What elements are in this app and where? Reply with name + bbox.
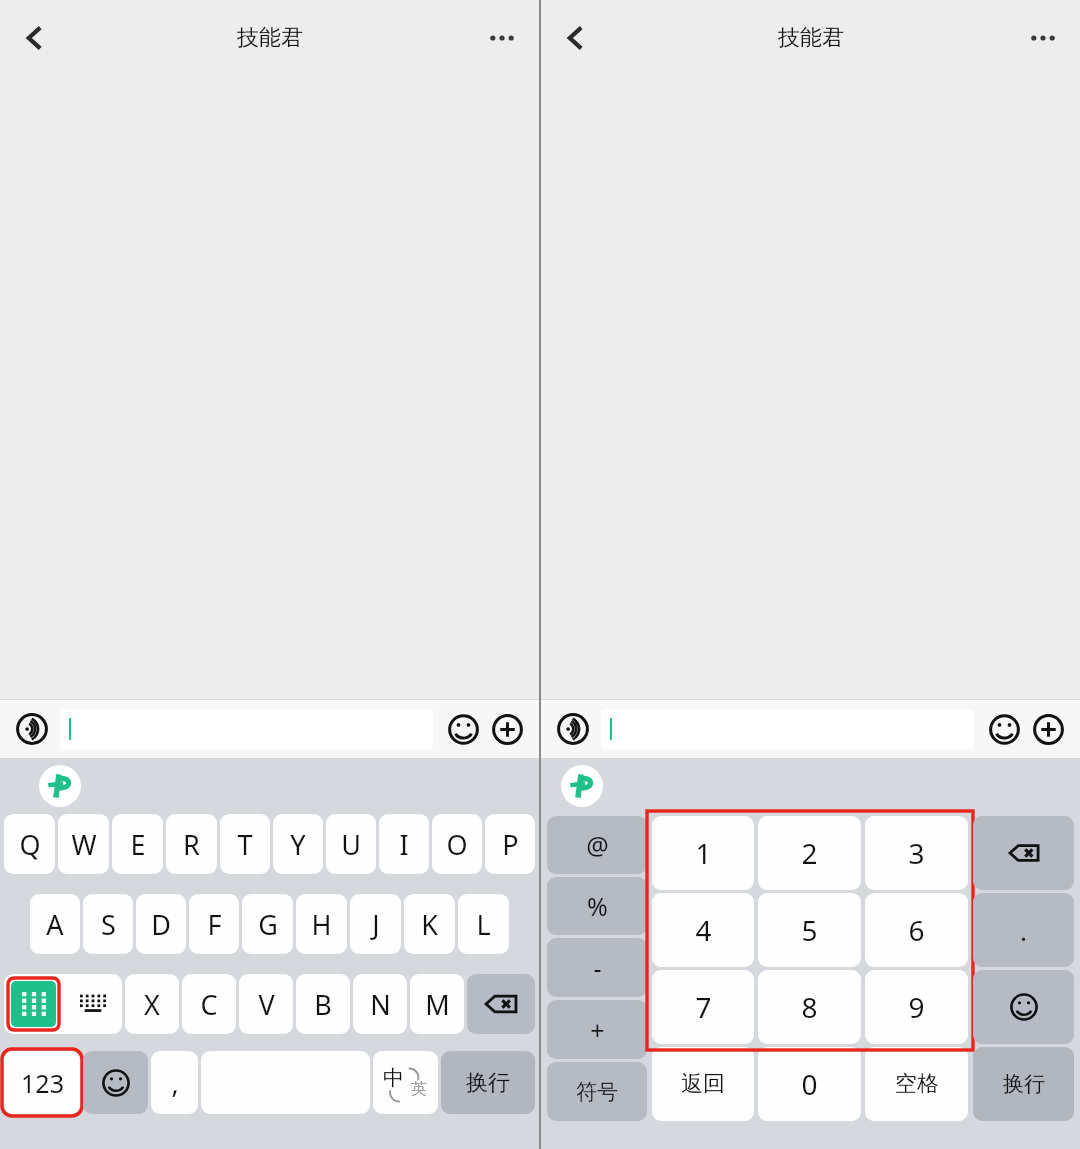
button[interactable]: Voice input xyxy=(12,709,52,749)
staticText: 英 xyxy=(411,1079,427,1099)
staticText: 5 xyxy=(801,911,818,949)
staticText: 空格 xyxy=(895,1070,939,1098)
button[interactable]: Handwriting grid xyxy=(11,981,56,1027)
staticText: Q xyxy=(19,826,41,863)
staticText: 7 xyxy=(695,988,712,1026)
button[interactable]: 空格 xyxy=(865,1047,968,1121)
button[interactable]: 返回 xyxy=(652,1047,754,1121)
button[interactable]: E xyxy=(112,814,163,874)
button[interactable]: G xyxy=(242,894,293,954)
staticText: K xyxy=(421,906,438,943)
button[interactable]: P xyxy=(485,814,535,874)
staticText: J xyxy=(372,906,380,943)
button[interactable]: 4 xyxy=(652,893,754,967)
button[interactable]: @ xyxy=(547,816,647,874)
staticText: R xyxy=(183,826,200,863)
button[interactable]: U xyxy=(326,814,376,874)
staticText: C xyxy=(200,986,218,1023)
button[interactable]: D xyxy=(136,894,186,954)
staticText: B xyxy=(314,986,332,1023)
staticText: 1 xyxy=(695,834,712,872)
staticText: X xyxy=(144,986,160,1023)
button[interactable] xyxy=(467,974,535,1034)
staticText: M xyxy=(425,986,450,1023)
staticText: Y xyxy=(290,826,306,863)
button[interactable]: O xyxy=(432,814,482,874)
button[interactable]: N xyxy=(353,974,407,1034)
button[interactable]: A xyxy=(30,894,80,954)
button[interactable]: C xyxy=(182,974,236,1034)
staticText: 123 xyxy=(21,1066,64,1100)
button[interactable]: Y xyxy=(273,814,323,874)
button[interactable]: 7 xyxy=(652,970,754,1044)
button[interactable] xyxy=(60,709,433,749)
button[interactable]: Input method logo xyxy=(561,765,603,807)
button[interactable]: 3 xyxy=(865,816,968,890)
button[interactable]: More options xyxy=(475,11,529,65)
staticText: . xyxy=(1020,913,1027,948)
button[interactable]: 2 xyxy=(758,816,861,890)
button[interactable]: Emoji xyxy=(984,709,1024,749)
button[interactable]: 6 xyxy=(865,893,968,967)
button[interactable] xyxy=(973,970,1074,1044)
button[interactable]: 符号 xyxy=(547,1062,647,1121)
button[interactable]: F xyxy=(189,894,239,954)
button[interactable]: X xyxy=(125,974,179,1034)
button[interactable]: S xyxy=(83,894,133,954)
button[interactable]: B xyxy=(296,974,350,1034)
button[interactable] xyxy=(83,1051,148,1114)
button[interactable]: V xyxy=(239,974,293,1034)
button[interactable]: 0 xyxy=(758,1047,861,1121)
staticText: L xyxy=(476,906,491,943)
button[interactable]: + xyxy=(547,1000,647,1059)
button[interactable]: More functions xyxy=(1028,709,1068,749)
button[interactable]: 换行 xyxy=(441,1051,535,1114)
button[interactable]: 9 xyxy=(865,970,968,1044)
button[interactable]: I xyxy=(379,814,429,874)
button[interactable]: 123 xyxy=(4,1051,80,1114)
button[interactable]: R xyxy=(166,814,217,874)
button[interactable]: L xyxy=(458,894,509,954)
button[interactable]: Input method logo xyxy=(39,765,81,807)
button[interactable]: 8 xyxy=(758,970,861,1044)
staticText: 技能君 xyxy=(778,24,844,52)
staticText: % xyxy=(587,889,608,923)
button[interactable]: 中 xyxy=(373,1051,438,1114)
staticText: + xyxy=(590,1013,605,1047)
button[interactable] xyxy=(973,816,1074,890)
button[interactable]: . xyxy=(973,893,1074,967)
button[interactable] xyxy=(601,709,974,749)
button[interactable]: 1 xyxy=(652,816,754,890)
button[interactable]: Voice input xyxy=(553,709,593,749)
button[interactable]: Back xyxy=(549,11,603,65)
button[interactable]: K xyxy=(404,894,455,954)
button[interactable]: Back xyxy=(8,11,62,65)
button[interactable]: M xyxy=(410,974,464,1034)
staticText: 返回 xyxy=(681,1070,725,1098)
button[interactable]: Q xyxy=(4,814,55,874)
button[interactable] xyxy=(201,1051,370,1114)
button[interactable]: J xyxy=(350,894,401,954)
staticText: G xyxy=(258,906,278,943)
staticText: @ xyxy=(586,828,609,862)
button[interactable]: - xyxy=(547,938,647,997)
button[interactable]: More functions xyxy=(487,709,527,749)
button[interactable]: W xyxy=(58,814,109,874)
button[interactable]: More options xyxy=(1016,11,1070,65)
staticText: U xyxy=(341,826,361,863)
button[interactable]: H xyxy=(296,894,347,954)
staticText: P xyxy=(502,826,519,863)
staticText: 4 xyxy=(695,911,712,949)
staticText: 2 xyxy=(801,834,818,872)
button[interactable]: 换行 xyxy=(973,1047,1074,1121)
button[interactable]: Emoji xyxy=(443,709,483,749)
button[interactable]: Keyboard layout xyxy=(63,974,122,1034)
staticText: E xyxy=(130,826,146,863)
staticText: 9 xyxy=(908,988,925,1026)
staticText: 符号 xyxy=(576,1079,618,1105)
button[interactable]: , xyxy=(151,1051,198,1114)
button[interactable]: 5 xyxy=(758,893,861,967)
button[interactable]: % xyxy=(547,877,647,935)
staticText: I xyxy=(399,826,409,863)
button[interactable]: T xyxy=(220,814,270,874)
